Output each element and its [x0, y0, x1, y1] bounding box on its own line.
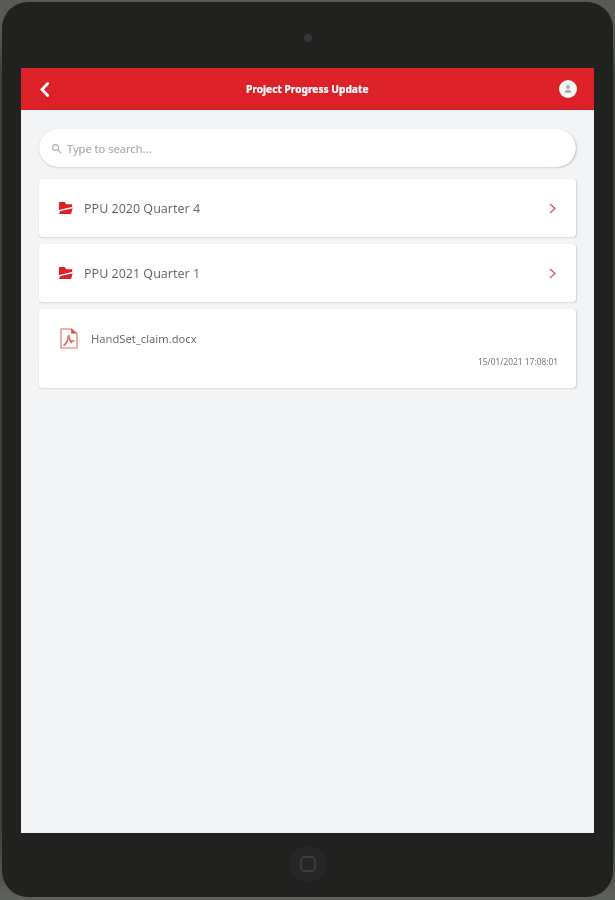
button[interactable]: Account	[559, 80, 577, 98]
button[interactable]: PPU 2020 Quarter 4	[39, 179, 576, 237]
staticText: HandSet_claim.docx	[91, 331, 197, 346]
staticText: 15/01/2021 17:08:01	[478, 356, 559, 367]
button[interactable]: Back	[28, 73, 60, 105]
button[interactable]: HandSet_claim.docx	[39, 309, 576, 388]
staticText: PPU 2021 Quarter 1	[84, 265, 201, 282]
button[interactable]: Home	[301, 857, 315, 871]
button[interactable]: Type to search...	[39, 129, 576, 167]
staticText: Project Progress Update	[246, 82, 369, 96]
button[interactable]: PPU 2021 Quarter 1	[39, 244, 576, 302]
staticText: Type to search...	[67, 141, 152, 156]
staticText: PPU 2020 Quarter 4	[84, 200, 201, 217]
